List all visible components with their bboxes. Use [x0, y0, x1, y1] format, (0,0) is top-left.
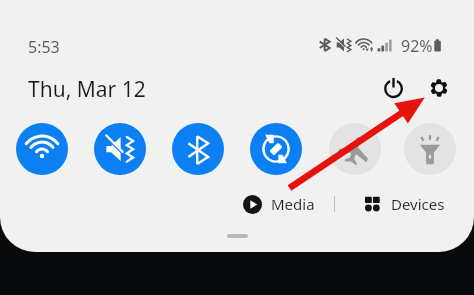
button[interactable]: Bluetooth: [172, 123, 224, 175]
button[interactable]: Devices: [363, 194, 445, 214]
staticText: Devices: [391, 194, 445, 214]
button[interactable]: Media: [243, 194, 315, 214]
button[interactable]: Power: [376, 70, 410, 104]
staticText: 92%: [401, 35, 433, 57]
staticText: Thu, Mar 12: [28, 75, 146, 104]
button[interactable]: Settings: [422, 71, 456, 105]
button[interactable]: Wi-Fi: [16, 123, 68, 175]
staticText: Media: [271, 194, 315, 214]
button[interactable]: Flashlight: [404, 123, 456, 175]
button[interactable]: Auto rotate: [250, 123, 302, 175]
staticText: 5:53: [28, 36, 60, 58]
button[interactable]: Sound off: [94, 123, 146, 175]
button[interactable]: Airplane mode: [329, 123, 381, 175]
